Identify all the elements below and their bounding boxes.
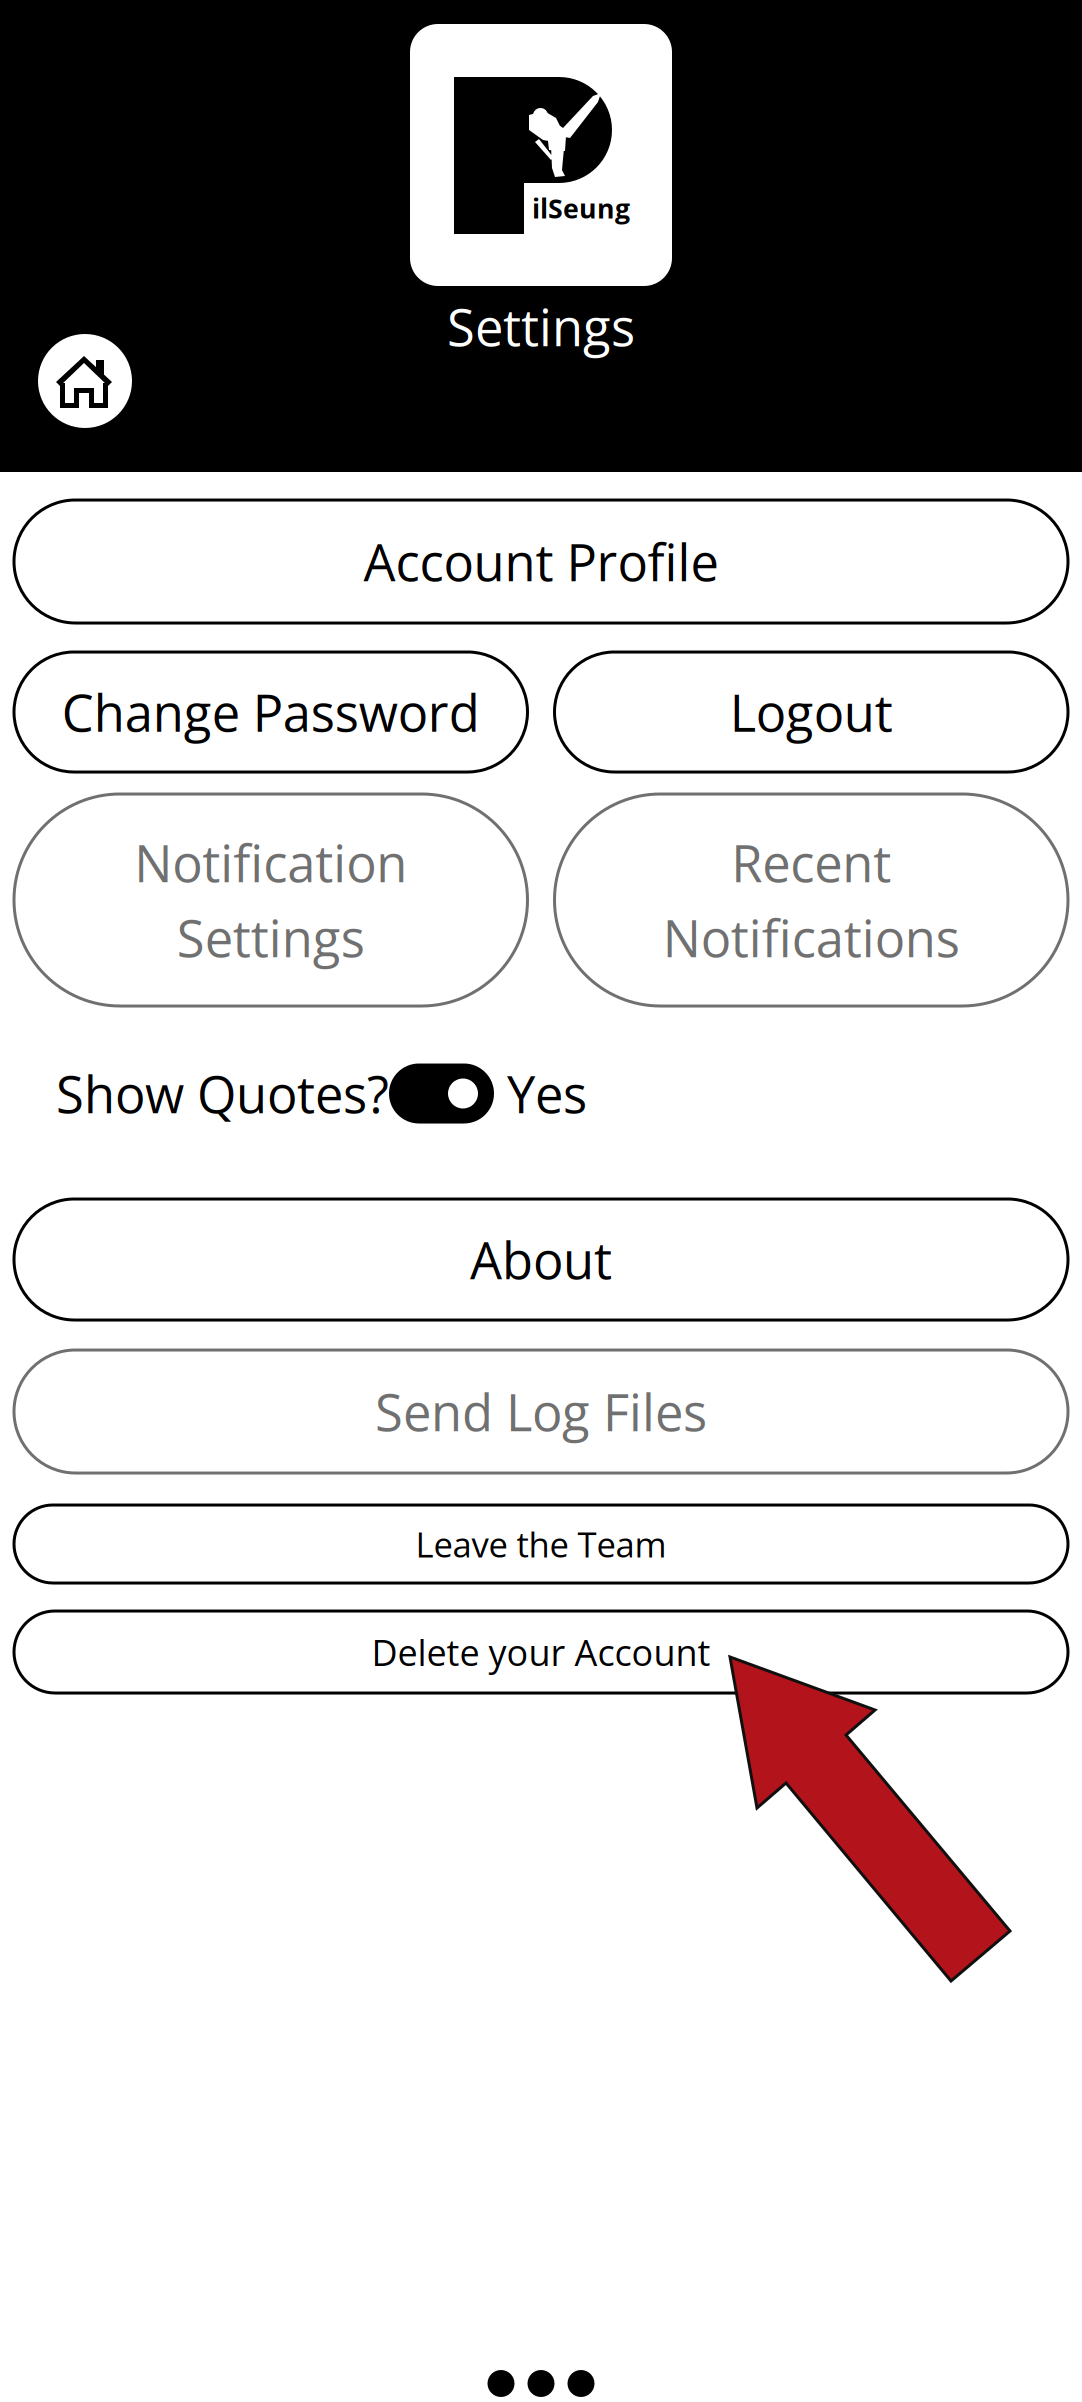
staticText: Logout: [730, 677, 893, 746]
staticText: Yes: [494, 1059, 587, 1128]
button[interactable]: Account Profile: [14, 500, 1068, 623]
button[interactable]: Delete your Account: [14, 1611, 1068, 1693]
button[interactable]: Send Log Files: [14, 1350, 1068, 1473]
staticText: Delete your Account: [371, 1627, 710, 1676]
button[interactable]: Notification: [14, 794, 527, 1006]
button[interactable]: Recent: [554, 794, 1068, 1006]
staticText: ilSeung: [532, 190, 630, 226]
button[interactable]: Show Quotes: [389, 1063, 494, 1123]
staticText: Recent: [731, 828, 891, 897]
staticText: Notification: [134, 828, 407, 897]
button[interactable]: About: [14, 1199, 1068, 1320]
staticText: Send Log Files: [375, 1377, 707, 1446]
staticText: Settings: [177, 903, 365, 972]
button[interactable]: Change Password: [14, 652, 527, 772]
staticText: Change Password: [62, 677, 480, 746]
button[interactable]: Home: [38, 334, 132, 428]
staticText: Leave the Team: [415, 1520, 666, 1568]
staticText: Notifications: [663, 903, 960, 972]
button[interactable]: Logout: [554, 652, 1068, 772]
staticText: About: [470, 1225, 612, 1294]
staticText: Account Profile: [363, 527, 718, 596]
button[interactable]: Leave the Team: [14, 1505, 1068, 1583]
staticText: Settings: [447, 292, 635, 361]
staticText: Show Quotes?: [56, 1059, 389, 1128]
